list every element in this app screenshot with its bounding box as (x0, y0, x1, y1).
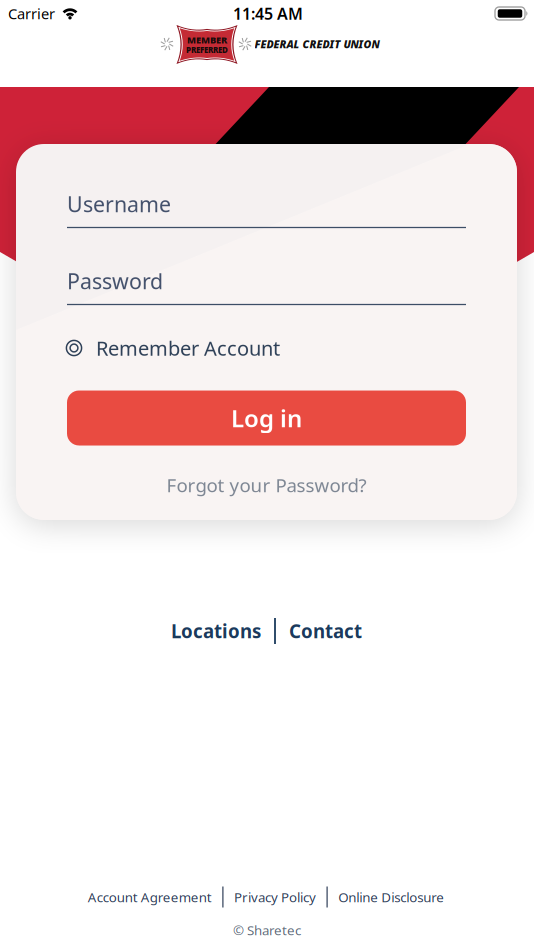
button[interactable]: Privacy Policy (234, 888, 316, 906)
button[interactable]: Remember Account (65, 335, 466, 361)
staticText: PREFERRED (186, 45, 228, 55)
staticText: Contact (289, 619, 362, 643)
staticText: Log in (231, 402, 302, 434)
staticText: © Sharetec (233, 921, 301, 939)
staticText: Locations (171, 619, 261, 643)
button[interactable]: Log in (67, 390, 466, 445)
button[interactable]: Account Agreement (88, 888, 212, 906)
button[interactable]: Username (66, 183, 467, 237)
staticText: Account Agreement (88, 888, 212, 906)
staticText: Username (67, 190, 171, 218)
staticText: Password (67, 267, 163, 295)
staticText: FEDERAL CREDIT UNION (254, 37, 379, 51)
button[interactable]: Locations (171, 619, 261, 643)
button[interactable]: Password (66, 260, 467, 314)
button[interactable]: Online Disclosure (338, 888, 444, 906)
staticText: Privacy Policy (234, 888, 316, 906)
staticText: Online Disclosure (338, 888, 444, 906)
staticText: Forgot your Password? (166, 473, 366, 497)
staticText: Carrier (8, 4, 55, 23)
staticText: 11:45 AM (233, 3, 303, 24)
button[interactable]: Contact (289, 619, 362, 643)
button[interactable]: Forgot your Password? (166, 473, 366, 497)
staticText: Remember Account (96, 335, 280, 361)
staticText: MEMBER (187, 34, 227, 46)
